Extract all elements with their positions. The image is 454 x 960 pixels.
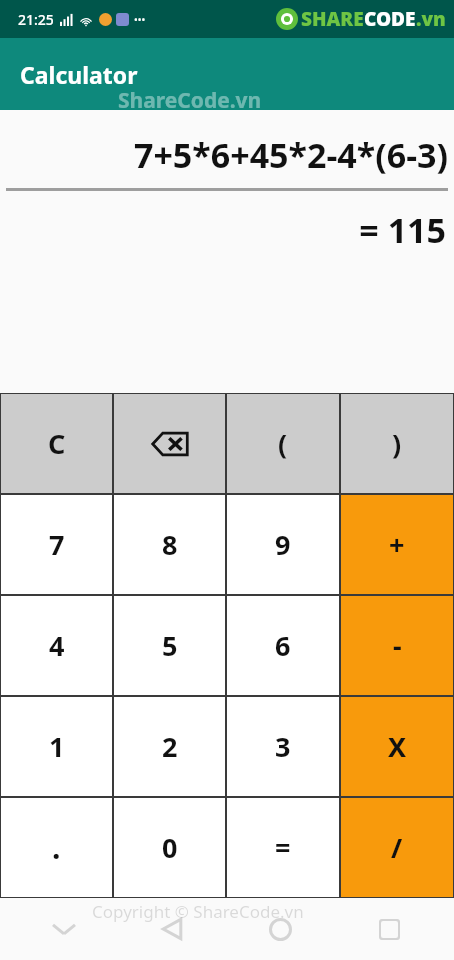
staticText: 5: [162, 627, 178, 664]
button[interactable]: 5: [114, 596, 225, 695]
staticText: 0: [162, 829, 178, 866]
staticText: 7+5*6+45*2-4*(6-3): [0, 132, 448, 178]
button[interactable]: -: [341, 596, 453, 695]
button[interactable]: 2: [114, 697, 225, 796]
button[interactable]: X: [341, 697, 453, 796]
staticText: = 115: [0, 207, 446, 253]
staticText: Calculator: [20, 59, 138, 90]
staticText: X: [388, 728, 407, 765]
staticText: (: [278, 425, 288, 462]
button[interactable]: ): [341, 394, 453, 493]
staticText: 9: [275, 526, 291, 563]
staticText: C: [48, 425, 66, 462]
button[interactable]: 7: [1, 495, 112, 594]
staticText: ): [392, 425, 402, 462]
staticText: 2: [162, 728, 178, 765]
staticText: -: [393, 627, 402, 664]
button[interactable]: =: [227, 798, 339, 897]
button[interactable]: Hide keyboard: [10, 898, 118, 960]
button[interactable]: +: [341, 495, 453, 594]
button[interactable]: Backspace: [114, 394, 225, 493]
staticText: 1: [49, 728, 65, 765]
staticText: 4: [49, 627, 65, 664]
button[interactable]: 3: [227, 697, 339, 796]
button[interactable]: /: [341, 798, 453, 897]
staticText: +: [389, 526, 405, 563]
staticText: 3: [275, 728, 291, 765]
button[interactable]: (: [227, 394, 339, 493]
button[interactable]: Back: [118, 898, 226, 960]
staticText: 8: [162, 526, 178, 563]
button[interactable]: 6: [227, 596, 339, 695]
staticText: 21:25: [18, 10, 54, 29]
staticText: .vn: [416, 6, 446, 32]
staticText: .: [52, 827, 61, 868]
staticText: Copyright © ShareCode.vn: [92, 900, 304, 923]
button[interactable]: C: [1, 394, 112, 493]
button[interactable]: 9: [227, 495, 339, 594]
button[interactable]: Home: [226, 898, 335, 960]
staticText: SHARE: [301, 6, 364, 32]
staticText: ShareCode.vn: [118, 86, 262, 115]
staticText: 6: [275, 627, 291, 664]
button[interactable]: Recent apps: [335, 898, 444, 960]
button[interactable]: 0: [114, 798, 225, 897]
button[interactable]: 4: [1, 596, 112, 695]
staticText: =: [275, 829, 291, 866]
staticText: •••: [134, 13, 146, 27]
staticText: 7: [49, 526, 65, 563]
button[interactable]: .: [1, 798, 112, 897]
button[interactable]: 1: [1, 697, 112, 796]
button[interactable]: 8: [114, 495, 225, 594]
staticText: /: [391, 829, 403, 866]
staticText: CODE: [364, 6, 416, 32]
